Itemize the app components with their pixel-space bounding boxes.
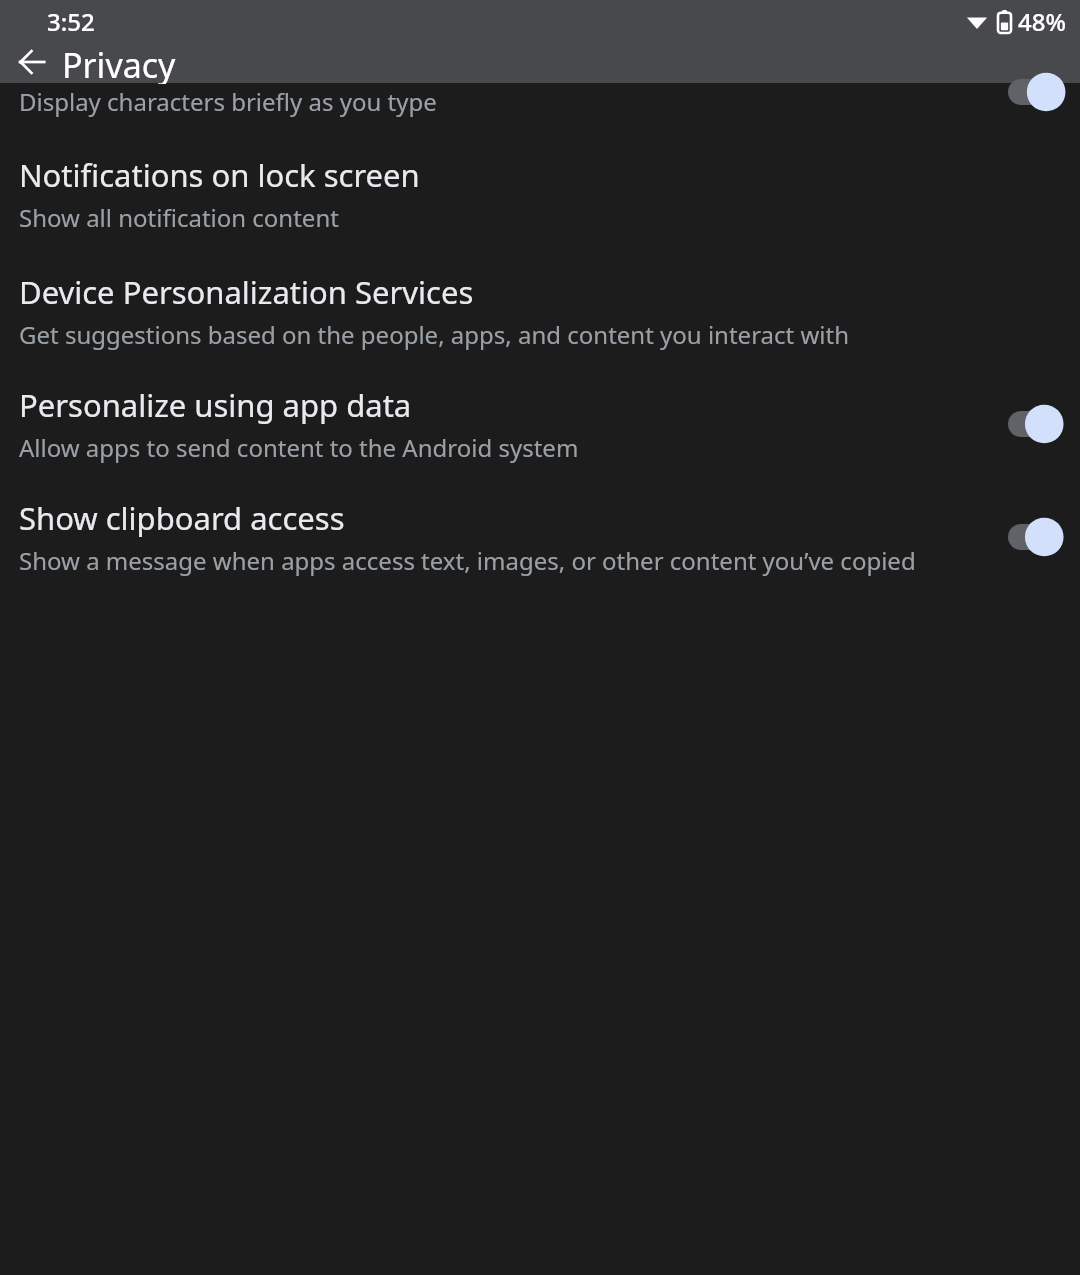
button[interactable]: Personalize using app data [0, 384, 1080, 464]
staticText: Privacy [62, 42, 176, 84]
button[interactable]: Show clipboard access [0, 497, 1080, 577]
staticText: Device Personalization Services [19, 271, 474, 313]
button[interactable]: Display characters briefly as you type [0, 83, 1080, 116]
button[interactable]: Toggle show passwords [1008, 71, 1064, 113]
button[interactable]: Toggle setting [1008, 516, 1064, 558]
staticText: Allow apps to send content to the Androi… [19, 431, 579, 464]
staticText: Notifications on lock screen [19, 154, 420, 196]
staticText: Display characters briefly as you type [19, 85, 1064, 118]
button[interactable]: Back [8, 41, 56, 83]
staticText: Personalize using app data [19, 384, 412, 426]
button[interactable]: Device Personalization Services [0, 271, 1080, 351]
staticText: Show a message when apps access text, im… [19, 544, 916, 577]
staticText: 3:52 [47, 5, 95, 38]
button[interactable]: Toggle setting [1008, 403, 1064, 445]
staticText: Get suggestions based on the people, app… [19, 318, 850, 351]
button[interactable]: Notifications on lock screen [0, 154, 1080, 234]
staticText: Show all notification content [19, 201, 339, 234]
staticText: Show clipboard access [19, 497, 345, 539]
staticText: 48% [1018, 5, 1066, 38]
